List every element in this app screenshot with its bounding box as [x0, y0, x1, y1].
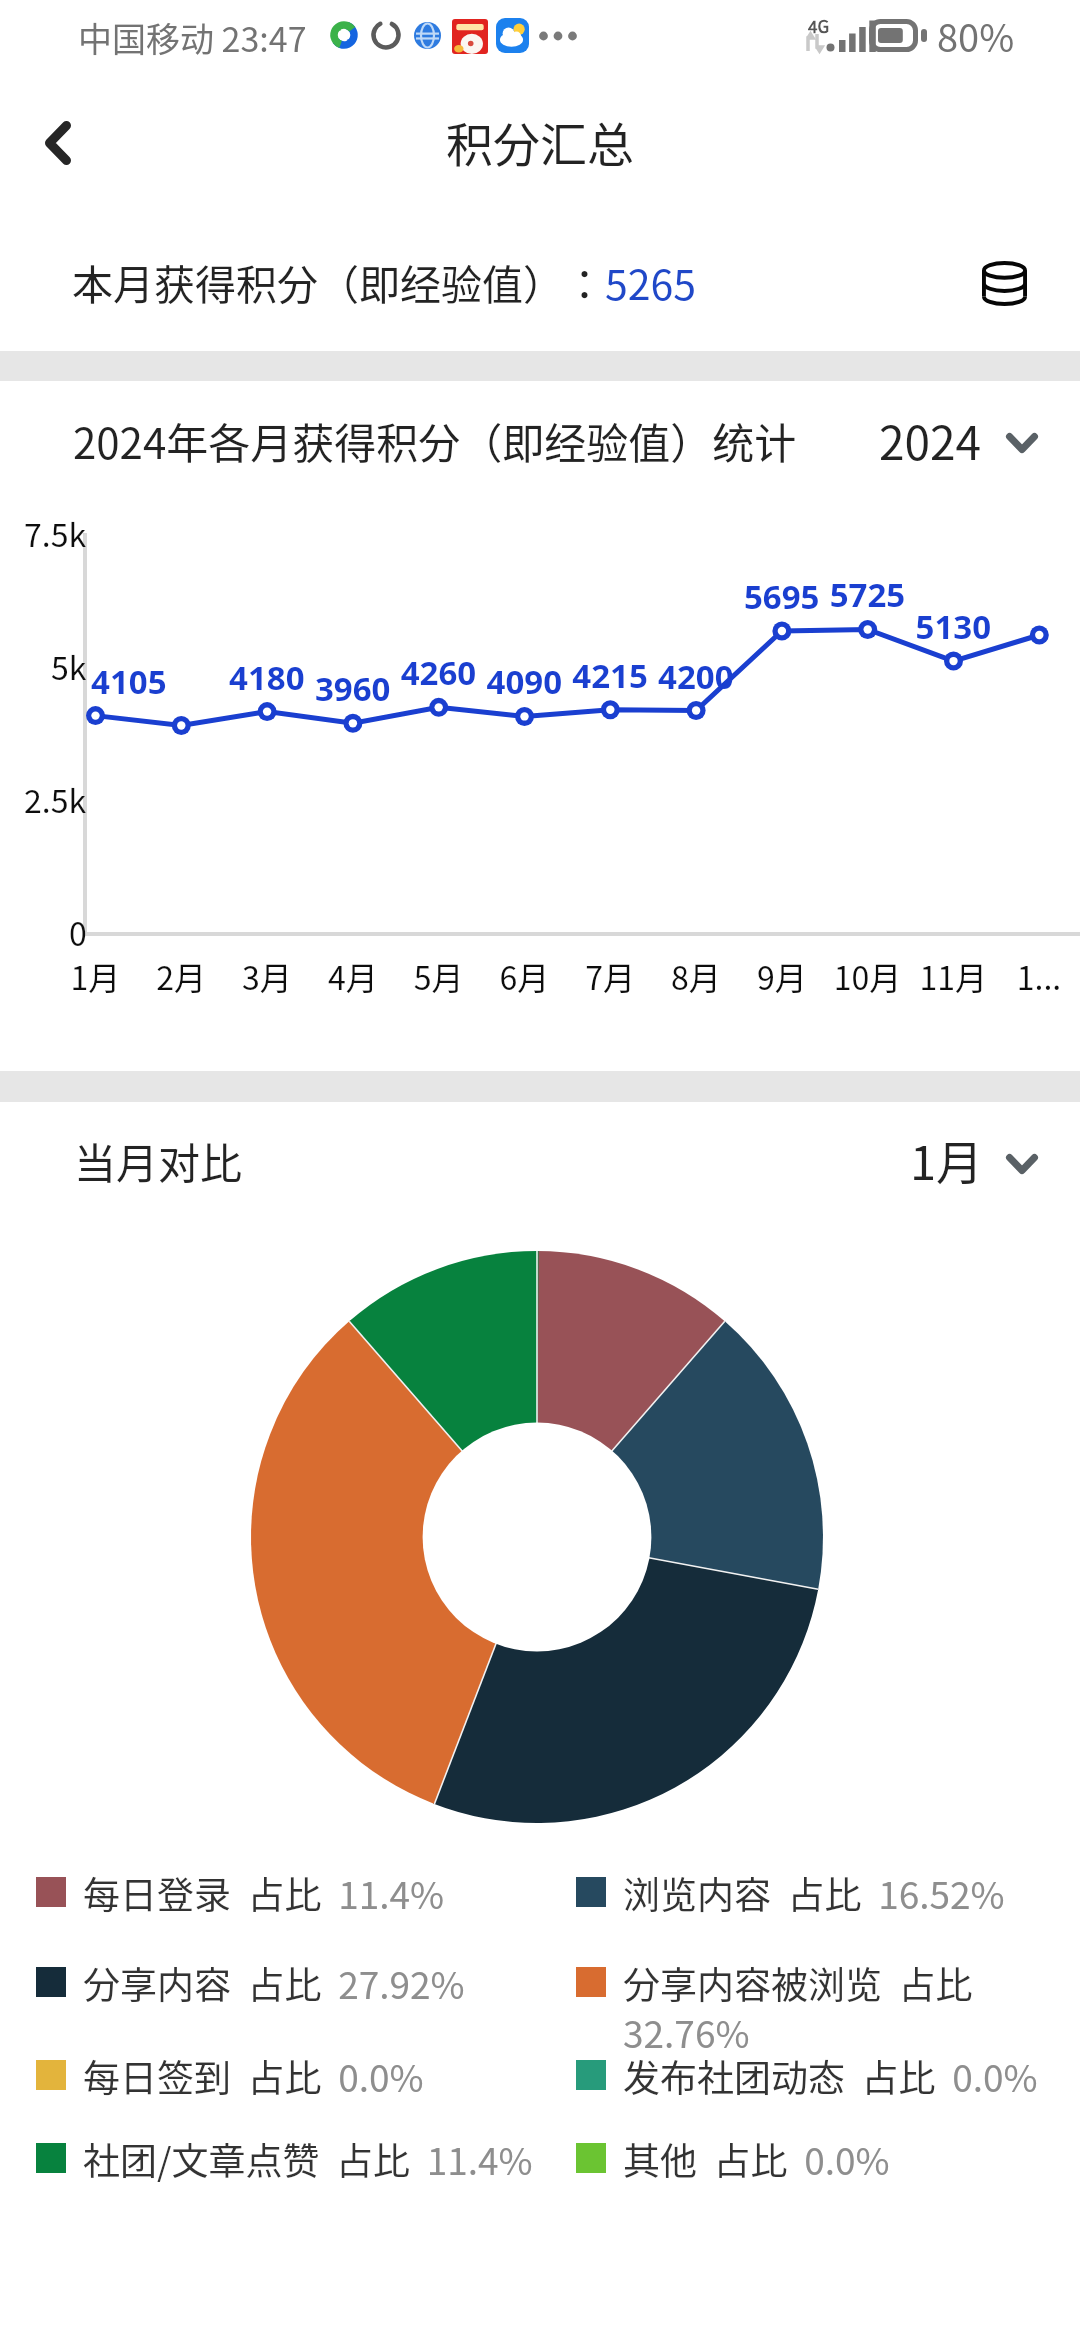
button[interactable]: Back [0, 84, 116, 202]
button[interactable] [36, 1957, 536, 2005]
button[interactable] [576, 2133, 1056, 2181]
staticText: 2024年各月获得积分（即经验值）统计 [73, 410, 797, 471]
button[interactable] [36, 2133, 536, 2181]
staticText: 浏览内容 占比 16.52% [623, 1866, 1056, 1920]
staticText: 2024 [879, 407, 982, 474]
staticText: 社团/文章点赞 占比 11.4% [83, 2132, 536, 2186]
button[interactable] [862, 396, 1048, 488]
button[interactable] [896, 1117, 1048, 1209]
button[interactable]: Records [967, 246, 1042, 321]
staticText: 积分汇总 [0, 107, 1080, 175]
staticText: 每日签到 占比 0.0% [83, 2049, 536, 2103]
staticText: 分享内容被浏览 占比 32.76% [623, 1956, 1056, 2059]
button[interactable] [36, 2050, 536, 2098]
button[interactable] [576, 1867, 1056, 1915]
staticText: 当月对比 [74, 1130, 243, 1191]
staticText: 本月获得积分（即经验值）： [72, 252, 605, 311]
staticText: 中国移动 23:47 [78, 13, 307, 62]
staticText: 4G [808, 13, 830, 38]
button[interactable] [36, 1867, 536, 1915]
staticText: 分享内容 占比 27.92% [83, 1956, 536, 2010]
button[interactable] [576, 2050, 1056, 2098]
staticText: 发布社团动态 占比 0.0% [623, 2049, 1056, 2103]
staticText: 其他 占比 0.0% [623, 2132, 1056, 2186]
button[interactable] [576, 1957, 1056, 2005]
staticText: 每日登录 占比 11.4% [83, 1866, 536, 1920]
staticText: 80% [937, 8, 1015, 63]
staticText: 5265 [605, 252, 697, 311]
staticText: 1月 [910, 1125, 984, 1193]
